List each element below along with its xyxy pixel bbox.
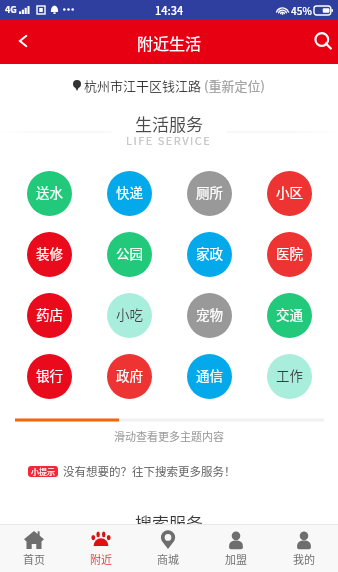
staticText: 小吃 [116,304,143,324]
staticText: 搜索服务 [135,510,203,535]
staticText: 政府 [116,365,143,385]
staticText: 银行 [36,365,63,385]
staticText: 工作 [276,365,303,385]
button[interactable]: 加盟 [202,525,270,572]
staticText: (重新定位) [204,76,265,95]
button[interactable]: Back [0,20,44,64]
staticText: 宠物 [196,304,223,324]
button[interactable]: 附近 [67,525,134,572]
button[interactable]: 医院 [267,232,312,277]
staticText: 通信 [196,365,223,385]
staticText: 快递 [116,182,143,202]
staticText: 附近 [90,551,112,567]
button[interactable]: 厕所 [187,171,232,216]
button[interactable]: 小区 [267,171,312,216]
button[interactable]: 公园 [107,232,152,277]
button[interactable]: 交通 [267,293,312,338]
staticText: 公园 [116,243,143,263]
staticText: 装修 [36,243,63,263]
staticText: 小提示 [31,466,55,477]
button[interactable]: 送水 [27,171,72,216]
staticText: 送水 [36,182,63,202]
button[interactable]: 小吃 [107,293,152,338]
button[interactable]: 工作 [267,354,312,399]
staticText: 小区 [276,182,303,202]
button[interactable]: 家政 [187,232,232,277]
button[interactable]: 快递 [107,171,152,216]
staticText: 首页 [23,551,45,567]
button[interactable]: 杭州市江干区钱江路 [0,71,338,99]
staticText: 商城 [157,551,179,567]
staticText: 医院 [276,243,303,263]
button[interactable]: 我的 [270,525,338,572]
button[interactable]: 通信 [187,354,232,399]
staticText: 交通 [276,304,303,324]
button[interactable]: 银行 [27,354,72,399]
staticText: 家政 [196,243,223,263]
button[interactable]: 首页 [0,525,67,572]
staticText: 附近生活 [137,31,202,54]
staticText: 药店 [36,304,63,324]
staticText: 我的 [293,551,315,567]
button[interactable]: Search [294,20,338,64]
button[interactable]: 装修 [27,232,72,277]
staticText: 14:34 [155,2,184,18]
staticText: 加盟 [225,551,247,567]
button[interactable]: 商城 [134,525,202,572]
button[interactable]: 宠物 [187,293,232,338]
staticText: LIFE SERVICE [126,132,212,148]
button[interactable]: 政府 [107,354,152,399]
staticText: 4G [5,3,17,16]
staticText: 45% [291,3,312,17]
button[interactable]: 药店 [27,293,72,338]
staticText: 滑动查看更多主题内容 [114,428,224,444]
staticText: 没有想要的？往下搜索更多服务！ [63,463,236,480]
staticText: 厕所 [196,182,223,202]
staticText: 生活服务 [135,111,203,136]
staticText: 杭州市江干区钱江路 [84,76,204,95]
